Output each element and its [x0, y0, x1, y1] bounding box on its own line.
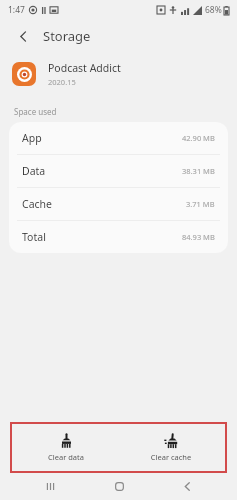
staticText: Clear data: [18, 452, 114, 462]
button[interactable]: Total: [9, 220, 228, 253]
staticText: Podcast Addict: [48, 61, 121, 75]
staticText: Total: [22, 230, 46, 244]
staticText: Storage: [43, 27, 91, 45]
button[interactable]: Back: [169, 473, 205, 500]
button[interactable]: Clear cache: [123, 430, 219, 466]
staticText: Space used: [14, 106, 57, 117]
staticText: 1:47: [8, 4, 25, 16]
button[interactable]: Clear data: [18, 430, 114, 466]
staticText: 68%: [205, 4, 222, 16]
staticText: 38.31 MB: [182, 166, 215, 176]
button[interactable]: Back: [12, 25, 34, 47]
button[interactable]: App: [9, 122, 228, 154]
staticText: App: [22, 131, 42, 145]
staticText: Data: [22, 164, 46, 178]
button[interactable]: Cache: [9, 187, 228, 220]
staticText: Cache: [22, 197, 52, 211]
staticText: 3.71 MB: [186, 199, 215, 209]
button[interactable]: Data: [9, 154, 228, 187]
staticText: 2020.15: [48, 77, 76, 87]
button[interactable]: Recents: [32, 473, 68, 500]
staticText: Clear cache: [123, 452, 219, 462]
staticText: 42.90 MB: [182, 133, 215, 143]
button[interactable]: Home: [101, 473, 137, 500]
staticText: 84.93 MB: [182, 232, 215, 242]
